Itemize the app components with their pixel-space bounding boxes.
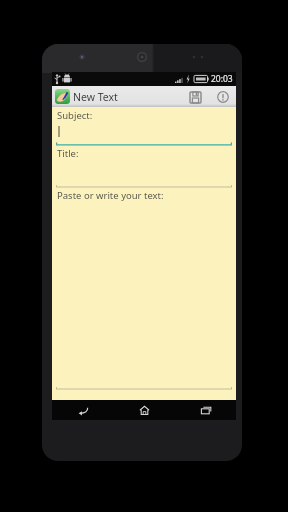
button[interactable] [56,160,232,188]
button[interactable] [56,122,232,146]
staticText: Title: [57,147,79,160]
button[interactable]: Back [52,400,114,420]
staticText: 20:03 [211,73,233,85]
staticText: Paste or write your text: [57,189,164,202]
button[interactable]: Recent apps [175,400,236,420]
button[interactable]: Home [114,400,175,420]
staticText: New Text [73,90,118,104]
button[interactable]: Info [213,87,233,107]
button[interactable]: Up, New Text app [55,89,70,104]
button[interactable]: Save [185,87,205,107]
staticText: Subject: [57,109,93,122]
